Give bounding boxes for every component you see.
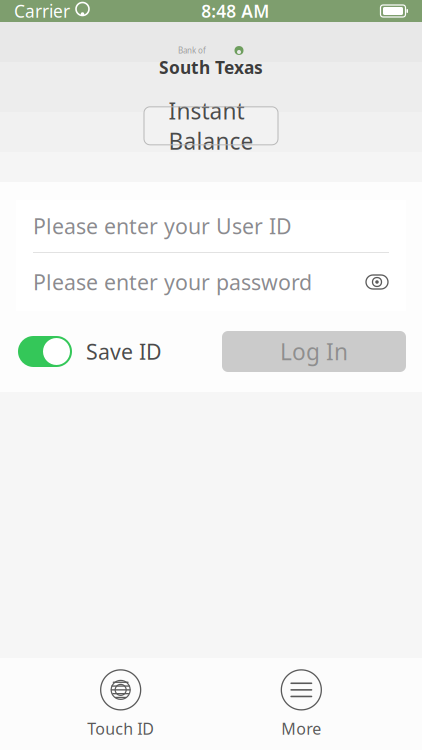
staticText: Log In [280,336,348,366]
button[interactable]: Instant Balance [144,107,278,145]
staticText: Carrier [14,0,70,22]
button[interactable]: More [241,667,361,741]
button[interactable]: Touch ID [61,667,181,741]
staticText: Please enter your User ID [33,212,292,240]
staticText: More [281,718,321,739]
button[interactable]: Log In [222,331,406,372]
staticText: Touch ID [87,718,154,739]
staticText: Save ID [86,337,162,366]
button[interactable]: Please enter your password [16,253,406,311]
staticText: Instant Balance [168,96,253,156]
button[interactable]: Save ID [18,336,162,367]
staticText: 8:48 AM [201,0,269,22]
staticText: Please enter your password [33,268,312,296]
staticText: South Texas [159,56,263,79]
staticText: Bank of [178,45,206,56]
button[interactable]: Please enter your User ID [16,200,406,252]
